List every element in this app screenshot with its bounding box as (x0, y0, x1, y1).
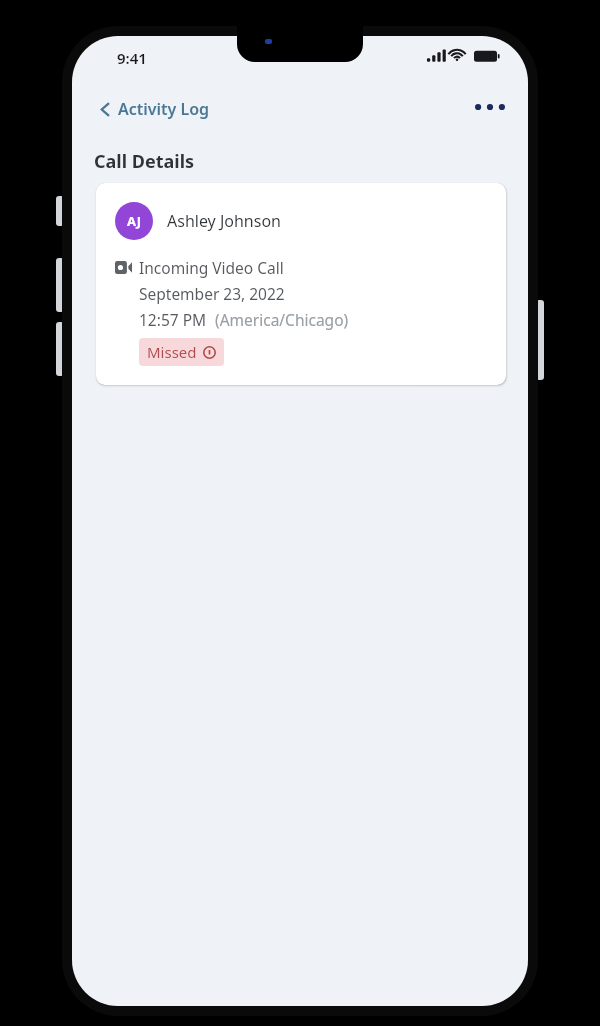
staticText: Call Details (94, 149, 195, 174)
staticText: 12:57 PM (139, 309, 207, 330)
staticText: (America/Chicago) (215, 309, 349, 330)
staticText: Ashley Johnson (167, 210, 281, 232)
staticText: AJ (127, 212, 141, 230)
button[interactable]: Activity Log (96, 94, 214, 124)
staticText: Missed (147, 342, 197, 362)
button[interactable]: More options (468, 92, 512, 122)
button[interactable]: AJ (96, 183, 506, 385)
staticText: Incoming Video Call (139, 257, 284, 278)
button[interactable]: Missed (139, 338, 224, 366)
staticText: September 23, 2022 (139, 283, 285, 304)
staticText: 9:41 (117, 48, 147, 68)
staticText: Activity Log (118, 98, 210, 120)
